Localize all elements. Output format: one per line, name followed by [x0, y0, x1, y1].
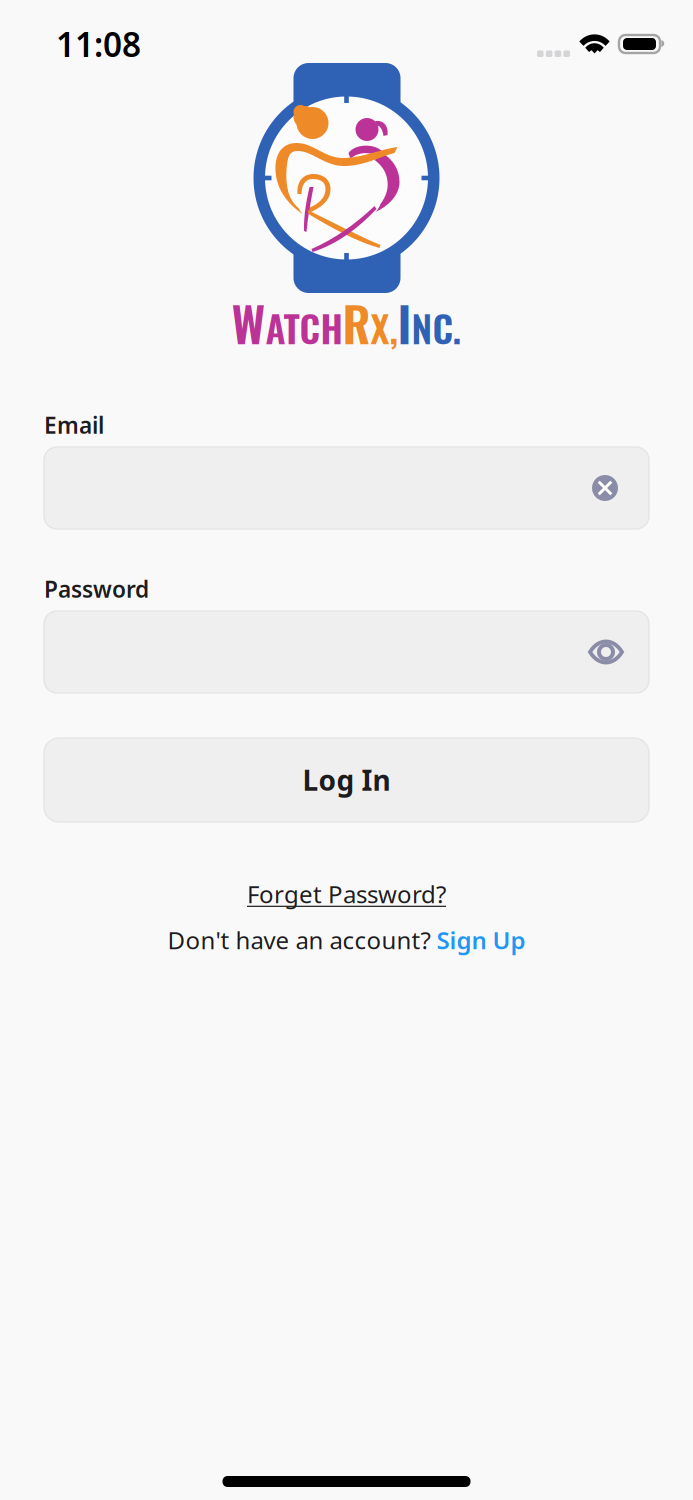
staticText: NC.	[411, 300, 461, 355]
button[interactable]: Sign Up	[436, 924, 525, 956]
button[interactable]: Clear email	[44, 447, 649, 529]
button[interactable]: Log In	[44, 738, 649, 822]
staticText: 11:08	[56, 22, 141, 66]
staticText: X,	[370, 300, 397, 355]
staticText: Forget Password?	[247, 878, 446, 910]
staticText: W	[231, 287, 265, 358]
staticText: Password	[44, 574, 149, 604]
staticText: Log In	[302, 761, 390, 799]
staticText: R	[342, 287, 370, 358]
button[interactable]: Forget Password?	[44, 879, 649, 909]
button[interactable]: Show password	[44, 611, 649, 693]
staticText: I	[397, 287, 411, 358]
staticText: Sign Up	[436, 924, 525, 956]
staticText: Don't have an account?	[167, 924, 436, 956]
staticText: Email	[44, 410, 104, 440]
staticText: ATCH	[265, 300, 342, 355]
